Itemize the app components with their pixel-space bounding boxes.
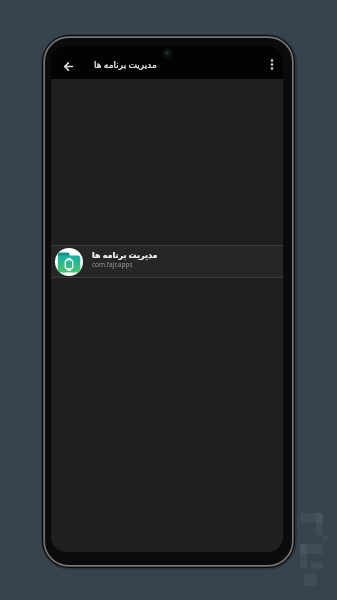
staticText: مدیریت برنامه ها [94,58,157,70]
staticText: مدیریت برنامه ها [92,249,158,260]
button[interactable]: مدیریت برنامه ها [51,246,283,277]
button[interactable] [269,59,275,71]
button[interactable]: مدیریت برنامه ها [51,46,283,79]
button[interactable] [64,62,73,71]
staticText: com.fajr.apps [92,260,133,269]
